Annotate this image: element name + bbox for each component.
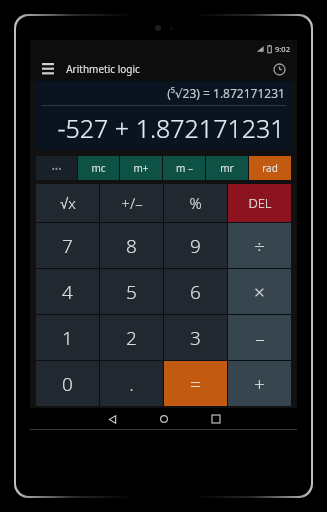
staticText: 1	[62, 325, 73, 351]
button[interactable]: 4	[36, 269, 99, 314]
button[interactable]: mr	[206, 156, 248, 180]
staticText: 8	[126, 233, 137, 259]
staticText: mc	[91, 161, 106, 175]
button[interactable]: •••	[36, 156, 77, 180]
button[interactable]: 8	[100, 223, 163, 268]
staticText: Arithmetic logic	[66, 62, 140, 76]
button[interactable]: –	[228, 315, 291, 360]
button[interactable]: +	[228, 361, 291, 406]
staticText: 4	[62, 279, 73, 305]
staticText: m+	[133, 161, 149, 175]
staticText: .	[129, 371, 134, 397]
button[interactable]: 5	[100, 269, 163, 314]
staticText: =	[190, 371, 201, 397]
button[interactable]: Home	[144, 408, 184, 430]
staticText: 9:02	[275, 44, 290, 54]
button[interactable]: Recents	[196, 408, 236, 430]
staticText: m –	[176, 161, 193, 175]
button[interactable]: 1	[36, 315, 99, 360]
staticText: -527 + 1.872171231	[57, 111, 285, 145]
staticText: ÷	[254, 233, 265, 259]
staticText: 6	[190, 279, 201, 305]
staticText: 9	[190, 233, 201, 259]
staticText: rad	[262, 161, 278, 175]
button[interactable]: .	[100, 361, 163, 406]
button[interactable]: %	[164, 184, 227, 222]
button[interactable]: m+	[120, 156, 162, 180]
button[interactable]: 9	[164, 223, 227, 268]
button[interactable]: 0	[36, 361, 99, 406]
button[interactable]: ÷	[228, 223, 291, 268]
button[interactable]: √x	[36, 184, 99, 222]
staticText: mr	[220, 161, 234, 175]
staticText: •••	[51, 162, 62, 174]
button[interactable]: mc	[78, 156, 119, 180]
button[interactable]: +/–	[100, 184, 163, 222]
button[interactable]: 3	[164, 315, 227, 360]
staticText: –	[255, 325, 265, 351]
button[interactable]: rad	[249, 156, 291, 180]
staticText: √x	[60, 193, 76, 213]
staticText: ×	[254, 279, 265, 305]
button[interactable]: ×	[228, 269, 291, 314]
staticText: (⁵√23) = 1.872171231	[167, 85, 285, 101]
staticText: %	[189, 193, 202, 213]
button[interactable]: m –	[163, 156, 205, 180]
staticText: 5	[126, 279, 137, 305]
staticText: DEL	[248, 194, 272, 212]
staticText: +/–	[121, 193, 143, 213]
staticText: 3	[190, 325, 201, 351]
staticText: 7	[62, 233, 73, 259]
button[interactable]: DEL	[228, 184, 291, 222]
staticText: +	[254, 371, 265, 397]
staticText: 2	[126, 325, 137, 351]
button[interactable]: History	[267, 57, 291, 81]
button[interactable]: 7	[36, 223, 99, 268]
button[interactable]: =	[164, 361, 227, 406]
button[interactable]: Menu	[36, 57, 60, 81]
staticText: 0	[62, 371, 73, 397]
button[interactable]: 2	[100, 315, 163, 360]
button[interactable]: 6	[164, 269, 227, 314]
button[interactable]: Back	[92, 408, 132, 430]
